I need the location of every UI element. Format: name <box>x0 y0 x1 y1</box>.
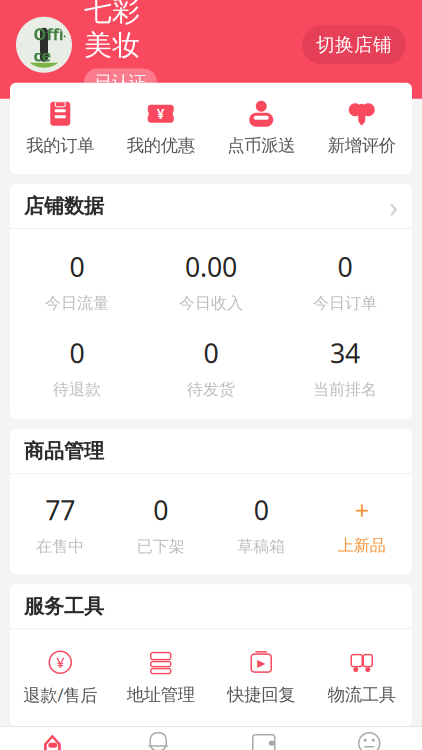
button[interactable]: 切换店铺 <box>302 25 406 64</box>
staticText: 服务工具 <box>24 594 104 619</box>
staticText: + <box>355 493 369 527</box>
staticText: 77 <box>45 492 75 528</box>
staticText: › <box>389 187 398 226</box>
button[interactable]: ¥ <box>110 97 211 160</box>
staticText: 0 <box>69 249 84 284</box>
staticText: 在售中 <box>36 537 84 556</box>
staticText: 退款/售后 <box>23 683 97 706</box>
staticText: 0.00 <box>185 249 237 284</box>
staticText: 0 <box>337 249 352 284</box>
button[interactable]: 新增评价 <box>311 97 412 160</box>
staticText: 我的订单 <box>26 135 94 156</box>
staticText: 今日流量 <box>45 293 109 313</box>
staticText: 34 <box>330 335 360 370</box>
button[interactable]: 物流工具 <box>311 646 412 709</box>
button[interactable]: 地址管理 <box>110 646 211 709</box>
button[interactable]: ▶ <box>211 646 311 709</box>
button[interactable]: 钱包 <box>211 726 316 750</box>
button[interactable]: ¥ <box>10 645 110 710</box>
staticText: 已下架 <box>137 537 185 556</box>
staticText: ▶ <box>257 657 265 669</box>
staticText: 七彩美妆 <box>84 0 140 62</box>
staticText: 店铺数据 <box>24 194 104 218</box>
button[interactable]: 我的 <box>316 726 422 750</box>
staticText: 地址管理 <box>127 684 195 705</box>
staticText: 今日订单 <box>313 293 377 313</box>
staticText: ¥ <box>157 105 165 123</box>
button[interactable]: 店铺数据 <box>10 184 412 228</box>
button[interactable]: ⌂ <box>0 726 105 750</box>
staticText: 点币派送 <box>227 135 295 156</box>
staticText: 我的优惠 <box>127 135 195 156</box>
staticText: 已认证 <box>95 71 146 93</box>
staticText: Office <box>33 23 68 66</box>
staticText: 新增评价 <box>328 135 396 156</box>
staticText: 0 <box>203 335 218 370</box>
staticText: ⌂ <box>42 724 64 750</box>
staticText: ¥ <box>56 652 64 672</box>
staticText: 0 <box>69 335 84 370</box>
staticText: 0 <box>153 492 168 528</box>
staticText: 快捷回复 <box>227 684 295 705</box>
button[interactable]: 我的订单 <box>10 97 110 160</box>
button[interactable]: 消息 <box>105 726 211 750</box>
staticText: 上新品 <box>338 536 386 555</box>
staticText: 草稿箱 <box>237 537 285 556</box>
button[interactable]: 点币派送 <box>211 97 311 160</box>
staticText: 待发货 <box>187 379 235 399</box>
staticText: 切换店铺 <box>316 33 392 56</box>
staticText: 物流工具 <box>328 684 396 705</box>
button[interactable]: + <box>311 493 412 555</box>
staticText: 0 <box>254 492 269 528</box>
staticText: 今日收入 <box>179 293 243 313</box>
staticText: 商品管理 <box>24 439 104 463</box>
staticText: 待退款 <box>53 379 101 399</box>
staticText: 当前排名 <box>313 379 377 399</box>
